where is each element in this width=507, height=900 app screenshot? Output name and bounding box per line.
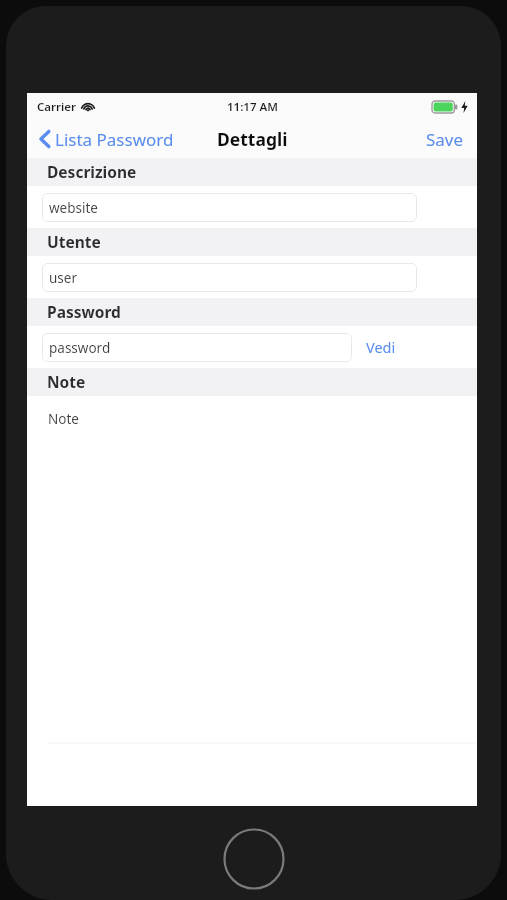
button[interactable]: Note xyxy=(27,396,477,806)
button[interactable]: website xyxy=(42,193,417,222)
staticText: Save xyxy=(426,128,464,151)
staticText: password xyxy=(49,339,111,357)
staticText: Carrier xyxy=(37,99,77,115)
button[interactable]: Vedi xyxy=(352,326,410,368)
staticText: user xyxy=(49,269,77,287)
staticText: Password xyxy=(47,301,121,322)
staticText: Vedi xyxy=(366,337,396,357)
staticText: Utente xyxy=(47,231,101,252)
button[interactable]: Home xyxy=(223,828,285,890)
staticText: Dettagli xyxy=(217,127,288,151)
staticText: Descrizione xyxy=(47,161,137,182)
staticText: Note xyxy=(47,371,86,392)
button[interactable]: Lista Password xyxy=(27,120,182,158)
staticText: website xyxy=(49,199,98,217)
button[interactable]: password xyxy=(42,333,352,362)
staticText: Note xyxy=(48,410,79,428)
button[interactable]: Save xyxy=(413,120,477,158)
staticText: Lista Password xyxy=(55,128,174,151)
button[interactable]: user xyxy=(42,263,417,292)
staticText: 11:17 AM xyxy=(227,99,278,115)
